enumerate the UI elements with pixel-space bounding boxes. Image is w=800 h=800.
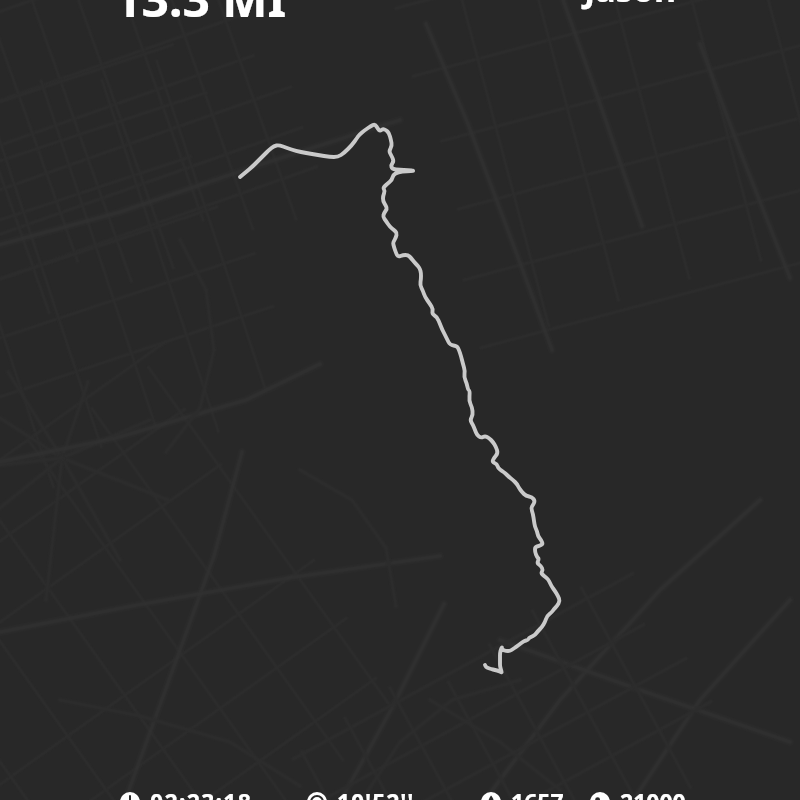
staticText: 13.3 MI — [114, 0, 287, 31]
other: Average pace — [307, 792, 327, 800]
button[interactable]: Average pace — [307, 782, 415, 800]
staticText: 02:23:18 — [150, 786, 253, 800]
staticText: 1657 — [511, 786, 564, 800]
button[interactable]: Calories — [481, 782, 564, 800]
other: Duration — [120, 792, 140, 800]
other: Steps — [590, 792, 610, 800]
staticText: Jason — [584, 0, 677, 12]
staticText: 21000 — [620, 786, 686, 800]
button[interactable]: Duration — [120, 782, 253, 800]
staticText: 10'52'' — [337, 786, 415, 800]
other: Calories — [481, 792, 501, 800]
button[interactable]: Steps — [590, 782, 686, 800]
